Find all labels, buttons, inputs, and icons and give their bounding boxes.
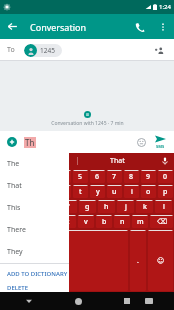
- button[interactable]: Send SMS: [152, 135, 169, 149]
- staticText: 7: [112, 172, 117, 182]
- staticText: o: [146, 187, 151, 197]
- button[interactable]: Back: [0, 14, 25, 39]
- staticText: Th: [25, 137, 35, 148]
- button[interactable]: Voice input: [156, 153, 174, 169]
- button[interactable]: Back: [20, 292, 38, 310]
- button[interactable]: j: [117, 200, 134, 213]
- staticText: j: [125, 202, 127, 212]
- staticText: ADD TO DICTIONARY: [7, 270, 68, 278]
- staticText: h: [104, 202, 109, 212]
- button[interactable]: This: [0, 197, 69, 219]
- button[interactable]: Th: [0, 153, 77, 169]
- staticText: q: [7, 187, 12, 197]
- button[interactable]: t: [73, 185, 88, 198]
- staticText: ,: [37, 256, 39, 266]
- button[interactable]: Attach: [5, 135, 19, 149]
- button[interactable]: They: [0, 241, 69, 263]
- button[interactable]: h: [98, 200, 115, 213]
- button[interactable]: .: [130, 230, 146, 291]
- button[interactable]: More options: [152, 16, 174, 38]
- button[interactable]: Emoji: [134, 135, 149, 150]
- button[interactable]: o: [141, 185, 156, 198]
- staticText: That: [7, 181, 22, 191]
- staticText: 0: [163, 172, 168, 182]
- staticText: n: [120, 217, 125, 227]
- button[interactable]: w: [19, 185, 35, 198]
- button[interactable]: l: [155, 200, 172, 213]
- button[interactable]: 0: [158, 170, 173, 183]
- button[interactable]: n: [114, 215, 130, 228]
- staticText: u: [112, 187, 117, 197]
- button[interactable]: q: [1, 185, 17, 198]
- button[interactable]: y: [90, 185, 105, 198]
- button[interactable]: p: [158, 185, 173, 198]
- button[interactable]: ⇧: [1, 215, 23, 228]
- button[interactable]: ADD TO DICTIONARY: [0, 264, 69, 284]
- staticText: 9: [146, 172, 151, 182]
- button[interactable]: There: [0, 219, 69, 241]
- button[interactable]: 7: [107, 170, 122, 183]
- button[interactable]: 5: [73, 170, 88, 183]
- button[interactable]: Recents: [118, 292, 136, 310]
- button[interactable]: Switch keyboard: [140, 292, 158, 310]
- button[interactable]: Call: [128, 15, 152, 39]
- staticText: l: [163, 202, 165, 212]
- button[interactable]: u: [107, 185, 122, 198]
- button[interactable]: c: [60, 215, 76, 228]
- staticText: p: [163, 187, 168, 197]
- staticText: Conversation with 1245 · 7 min: [51, 120, 124, 127]
- button[interactable]: k: [136, 200, 153, 213]
- button[interactable]: g: [79, 200, 96, 213]
- staticText: k: [143, 202, 147, 212]
- button[interactable]: ?123: [1, 230, 27, 291]
- staticText: ☺: [157, 257, 165, 265]
- button[interactable]: ☺: [148, 230, 173, 291]
- button[interactable]: 8: [124, 170, 139, 183]
- button[interactable]: That: [0, 175, 69, 197]
- button[interactable]: 4: [55, 170, 71, 183]
- button[interactable]: That: [78, 153, 156, 169]
- button[interactable]: b: [96, 215, 112, 228]
- button[interactable]: DELETE: [0, 284, 69, 292]
- button[interactable]: r: [55, 185, 71, 198]
- button[interactable]: m: [132, 215, 148, 228]
- button[interactable]: Add contact: [151, 42, 167, 58]
- button[interactable]: Space: [48, 230, 128, 291]
- staticText: 1245: [40, 46, 55, 55]
- staticText: f: [67, 202, 70, 212]
- staticText: a: [9, 202, 14, 212]
- button[interactable]: 1245: [24, 44, 62, 57]
- button[interactable]: a: [3, 200, 20, 213]
- staticText: Conversation: [30, 21, 86, 33]
- button[interactable]: i: [124, 185, 139, 198]
- button[interactable]: ,: [29, 230, 46, 291]
- button[interactable]: ⌫: [150, 215, 173, 228]
- staticText: To: [7, 45, 15, 55]
- button[interactable]: v: [78, 215, 94, 228]
- button[interactable]: 6: [90, 170, 105, 183]
- button[interactable]: Home: [69, 292, 87, 310]
- button[interactable]: 9: [141, 170, 156, 183]
- button[interactable]: The: [0, 153, 69, 175]
- staticText: c: [66, 217, 70, 227]
- button[interactable]: f: [60, 200, 77, 213]
- staticText: t: [79, 187, 82, 197]
